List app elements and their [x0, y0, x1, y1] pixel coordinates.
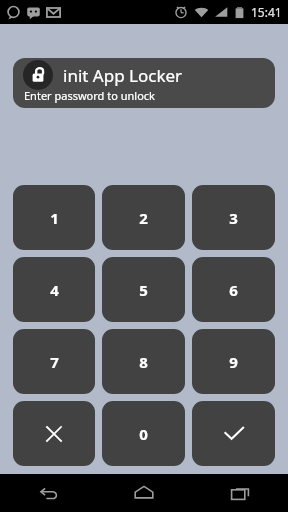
button[interactable]: Clear	[13, 401, 95, 466]
button[interactable]: 3	[192, 185, 275, 250]
staticText: 9	[229, 352, 238, 372]
staticText: 15:41	[251, 4, 282, 20]
button[interactable]: Back	[0, 474, 96, 512]
button[interactable]: 5	[102, 257, 185, 322]
staticText: 2	[139, 208, 148, 228]
button[interactable]: 7	[13, 329, 95, 394]
staticText: 6	[229, 280, 238, 300]
button[interactable]: 0	[102, 401, 185, 466]
button[interactable]: 6	[192, 257, 275, 322]
button[interactable]: 4	[13, 257, 95, 322]
staticText: 1	[50, 208, 59, 228]
button[interactable]: 2	[102, 185, 185, 250]
staticText: 7	[50, 352, 59, 372]
button[interactable]: Confirm	[192, 401, 275, 466]
button[interactable]: init App Locker	[13, 58, 275, 108]
staticText: 5	[139, 280, 148, 300]
button[interactable]: Home	[96, 474, 192, 512]
button[interactable]: 1	[13, 185, 95, 250]
staticText: 3	[229, 208, 238, 228]
staticText: 4	[50, 280, 59, 300]
button[interactable]: Recent apps	[192, 474, 288, 512]
staticText: Enter password to unlock	[24, 88, 155, 103]
staticText: 0	[139, 424, 148, 444]
staticText: init App Locker	[63, 64, 183, 87]
button[interactable]: 9	[192, 329, 275, 394]
staticText: 8	[139, 352, 148, 372]
button[interactable]: 8	[102, 329, 185, 394]
